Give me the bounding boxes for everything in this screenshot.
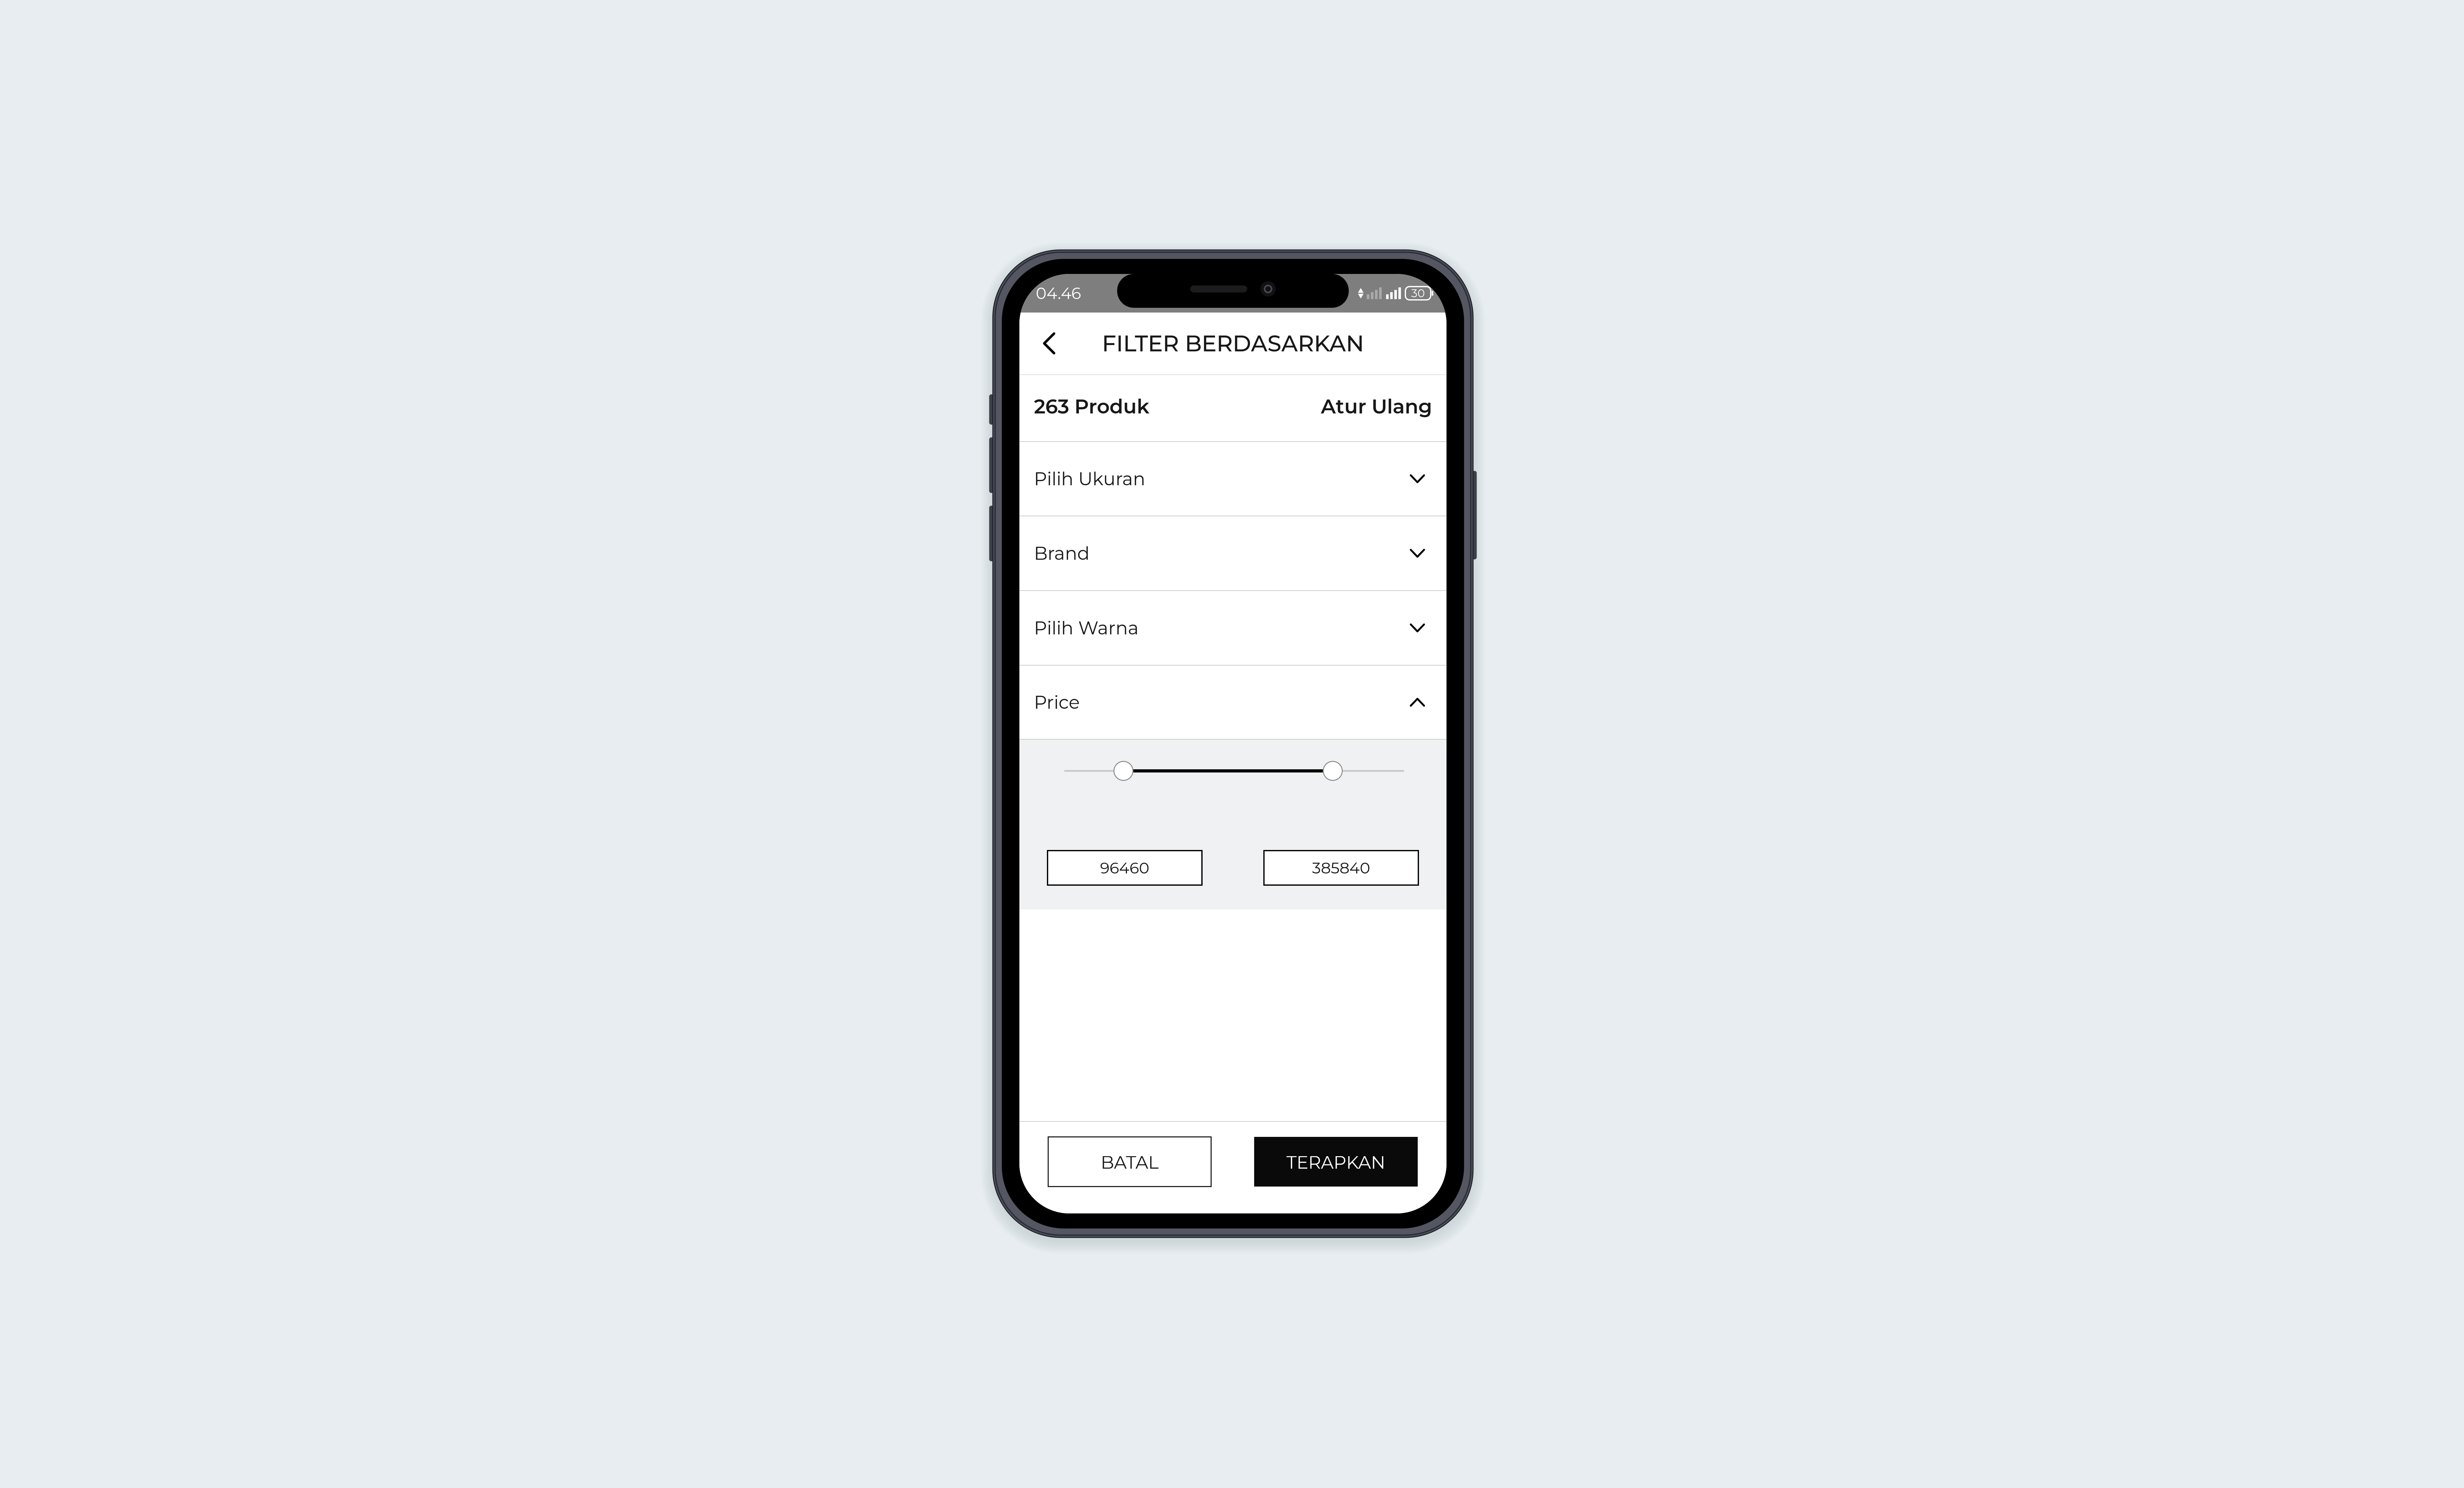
button[interactable]: 385840 bbox=[1264, 851, 1418, 885]
staticText: 30 bbox=[1411, 287, 1425, 300]
button[interactable]: Price bbox=[1019, 666, 1447, 739]
staticText: TERAPKAN bbox=[1286, 1152, 1385, 1173]
button[interactable]: Pilih Warna bbox=[1019, 591, 1447, 665]
button[interactable]: Pilih Ukuran bbox=[1019, 442, 1447, 516]
button[interactable]: Atur Ulang bbox=[1321, 394, 1432, 418]
button[interactable]: Brand bbox=[1019, 516, 1447, 590]
staticText: Price bbox=[1034, 691, 1080, 713]
staticText: 385840 bbox=[1312, 858, 1370, 877]
staticText: Pilih Warna bbox=[1034, 617, 1139, 639]
staticText: Brand bbox=[1034, 542, 1090, 564]
button[interactable]: TERAPKAN bbox=[1254, 1137, 1418, 1187]
staticText: Atur Ulang bbox=[1321, 394, 1432, 418]
staticText: FILTER BERDASARKAN bbox=[1102, 330, 1364, 357]
button[interactable]: BATAL bbox=[1048, 1137, 1211, 1187]
staticText: 04.46 bbox=[1036, 283, 1081, 303]
button[interactable]: Back bbox=[1031, 321, 1067, 366]
staticText: Pilih Ukuran bbox=[1034, 468, 1145, 490]
staticText: BATAL bbox=[1101, 1152, 1159, 1173]
staticText: 263 Produk bbox=[1034, 394, 1149, 418]
staticText: 96460 bbox=[1100, 858, 1149, 877]
button[interactable]: 96460 bbox=[1048, 851, 1202, 885]
